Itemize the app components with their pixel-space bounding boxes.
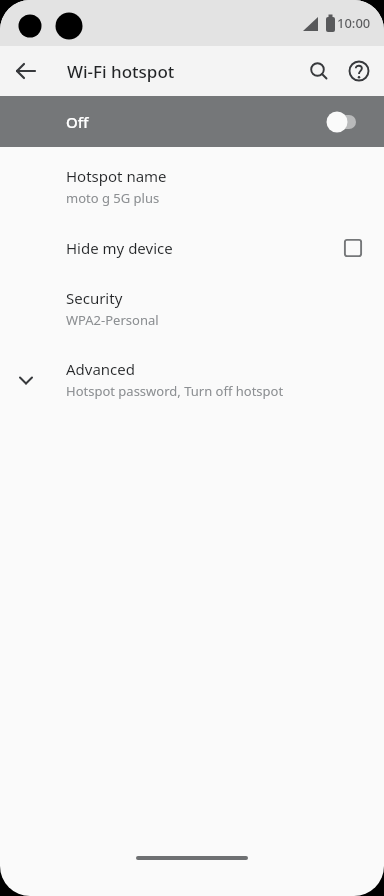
button[interactable]: Hide my device [0, 232, 384, 264]
button[interactable]: Search [299, 51, 339, 91]
staticText: 10:00 [337, 14, 371, 32]
staticText: Security [66, 288, 123, 308]
staticText: Advanced [66, 359, 136, 379]
staticText: Hide my device [66, 238, 173, 258]
staticText: Wi-Fi hotspot [67, 60, 175, 83]
staticText: WPA2-Personal [66, 311, 159, 329]
button[interactable]: Security [0, 283, 384, 334]
staticText: Off [66, 112, 89, 132]
staticText: moto g 5G plus [66, 189, 160, 207]
button[interactable]: Back [8, 53, 44, 89]
staticText: Hotspot password, Turn off hotspot autom… [66, 382, 370, 400]
button[interactable]: Hotspot name [0, 161, 384, 212]
button[interactable]: Advanced [0, 354, 384, 405]
button[interactable]: Help [339, 51, 379, 91]
staticText: Hotspot name [66, 166, 167, 186]
button[interactable]: Off [0, 96, 384, 147]
